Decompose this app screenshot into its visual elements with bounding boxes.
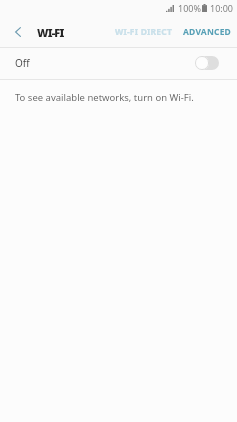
button[interactable]: ADVANCED [178,17,237,47]
staticText: 10:00 [210,2,234,14]
button[interactable]: Off [0,48,237,79]
button[interactable]: Wi-Fi toggle [195,56,219,70]
staticText: ADVANCED [183,26,232,38]
staticText: WI-FI [37,25,64,40]
staticText: WI-FI DIRECT [115,26,173,38]
staticText: To see available networks, turn on Wi-Fi… [15,91,194,104]
staticText: 100% [178,2,201,14]
staticText: Off [15,56,30,70]
button[interactable]: WI-FI DIRECT [110,17,178,47]
button[interactable]: Back [3,17,33,47]
